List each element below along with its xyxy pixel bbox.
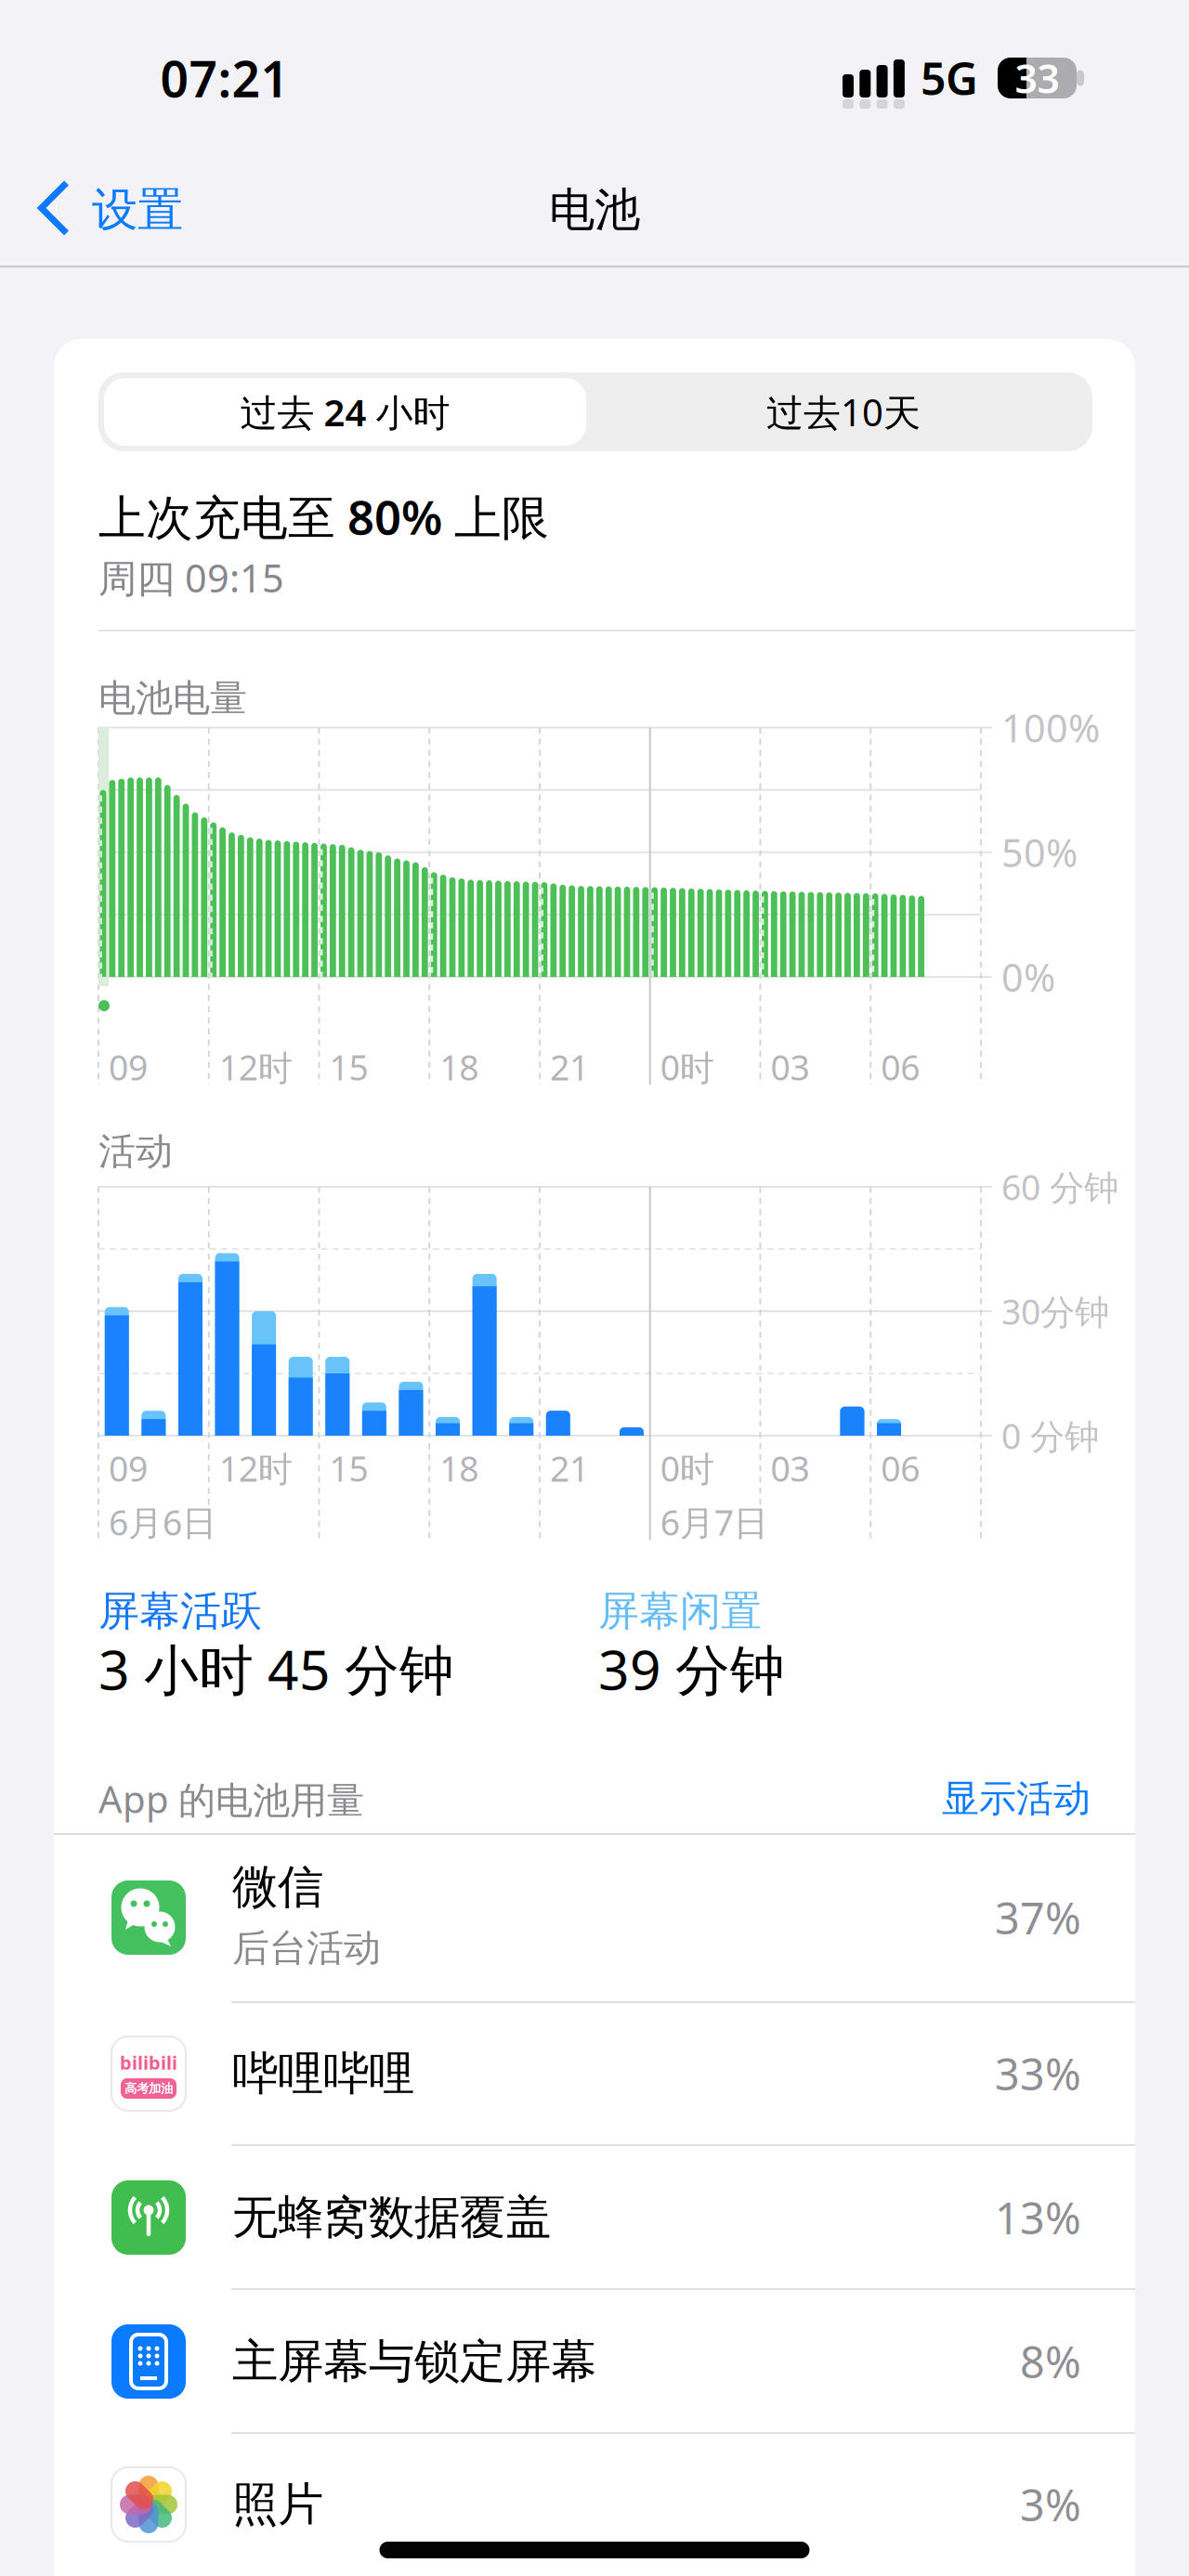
staticText: 6月7日 bbox=[660, 1499, 768, 1545]
staticText: 设置 bbox=[92, 182, 183, 238]
staticText: 主屏幕与锁定屏幕 bbox=[232, 2333, 596, 2390]
staticText: 0% bbox=[1001, 951, 1055, 1002]
staticText: 100% bbox=[1001, 702, 1100, 753]
staticText: 周四 09:15 bbox=[98, 552, 284, 603]
staticText: 18 bbox=[440, 1445, 479, 1491]
button[interactable]: 主屏幕与锁定屏幕 bbox=[54, 2291, 1135, 2432]
staticText: 照片 bbox=[232, 2476, 323, 2533]
staticText: 哔哩哔哩 bbox=[232, 2045, 414, 2102]
staticText: 37% bbox=[995, 1889, 1081, 1946]
staticText: 微信 bbox=[232, 1859, 323, 1915]
staticText: 06 bbox=[881, 1044, 920, 1090]
staticText: 06 bbox=[881, 1445, 920, 1491]
staticText: 21 bbox=[550, 1445, 589, 1491]
staticText: 39 分钟 bbox=[598, 1633, 785, 1705]
staticText: 21 bbox=[550, 1044, 589, 1090]
staticText: 后台活动 bbox=[232, 1925, 381, 1971]
staticText: 33% bbox=[995, 2045, 1081, 2102]
staticText: 屏幕活跃 bbox=[98, 1586, 262, 1636]
staticText: 15 bbox=[329, 1445, 368, 1491]
staticText: 上次充电至 80% 上限 bbox=[98, 485, 549, 548]
staticText: 03 bbox=[771, 1445, 810, 1491]
staticText: 60 分钟 bbox=[1001, 1164, 1118, 1210]
button[interactable]: 照片 bbox=[54, 2434, 1135, 2575]
staticText: 09 bbox=[109, 1044, 148, 1090]
staticText: 8% bbox=[1020, 2333, 1081, 2390]
staticText: 过去10天 bbox=[766, 387, 921, 436]
button[interactable]: 设置 bbox=[28, 163, 279, 253]
staticText: 显示活动 bbox=[942, 1776, 1091, 1821]
staticText: 09 bbox=[109, 1445, 148, 1491]
staticText: 6月6日 bbox=[109, 1499, 216, 1545]
staticText: 0 分钟 bbox=[1001, 1413, 1099, 1459]
staticText: 03 bbox=[771, 1044, 810, 1090]
staticText: 高考加油 bbox=[124, 2081, 173, 2096]
staticText: 18 bbox=[440, 1044, 479, 1090]
staticText: 无蜂窝数据覆盖 bbox=[232, 2189, 551, 2246]
button[interactable]: 显示活动 bbox=[812, 1774, 1091, 1824]
staticText: 5G bbox=[921, 48, 978, 108]
staticText: 电池 bbox=[549, 182, 640, 238]
button[interactable]: 无蜂窝数据覆盖 bbox=[54, 2147, 1135, 2288]
button[interactable]: 微信 bbox=[54, 1834, 1135, 2001]
staticText: 13% bbox=[995, 2189, 1081, 2246]
staticText: 07:21 bbox=[160, 45, 289, 111]
staticText: App 的电池用量 bbox=[98, 1774, 364, 1823]
staticText: 3 小时 45 分钟 bbox=[98, 1633, 454, 1705]
button[interactable]: 过去 24 小时 bbox=[104, 378, 586, 446]
staticText: 12时 bbox=[219, 1044, 292, 1090]
staticText: 屏幕闲置 bbox=[598, 1586, 762, 1636]
staticText: 33 bbox=[1015, 52, 1059, 104]
staticText: 过去 24 小时 bbox=[240, 387, 450, 436]
staticText: 50% bbox=[1001, 827, 1078, 878]
staticText: 0时 bbox=[660, 1445, 714, 1491]
staticText: 3% bbox=[1020, 2476, 1081, 2533]
staticText: 0时 bbox=[660, 1044, 714, 1090]
staticText: bilibili bbox=[120, 2050, 177, 2075]
staticText: 15 bbox=[329, 1044, 368, 1090]
staticText: 30分钟 bbox=[1001, 1288, 1109, 1334]
staticText: 电池电量 bbox=[98, 675, 247, 721]
button[interactable]: 过去10天 bbox=[602, 378, 1085, 446]
button[interactable]: bilibili bbox=[54, 2003, 1135, 2144]
staticText: 活动 bbox=[98, 1129, 173, 1174]
staticText: 12时 bbox=[219, 1445, 292, 1491]
